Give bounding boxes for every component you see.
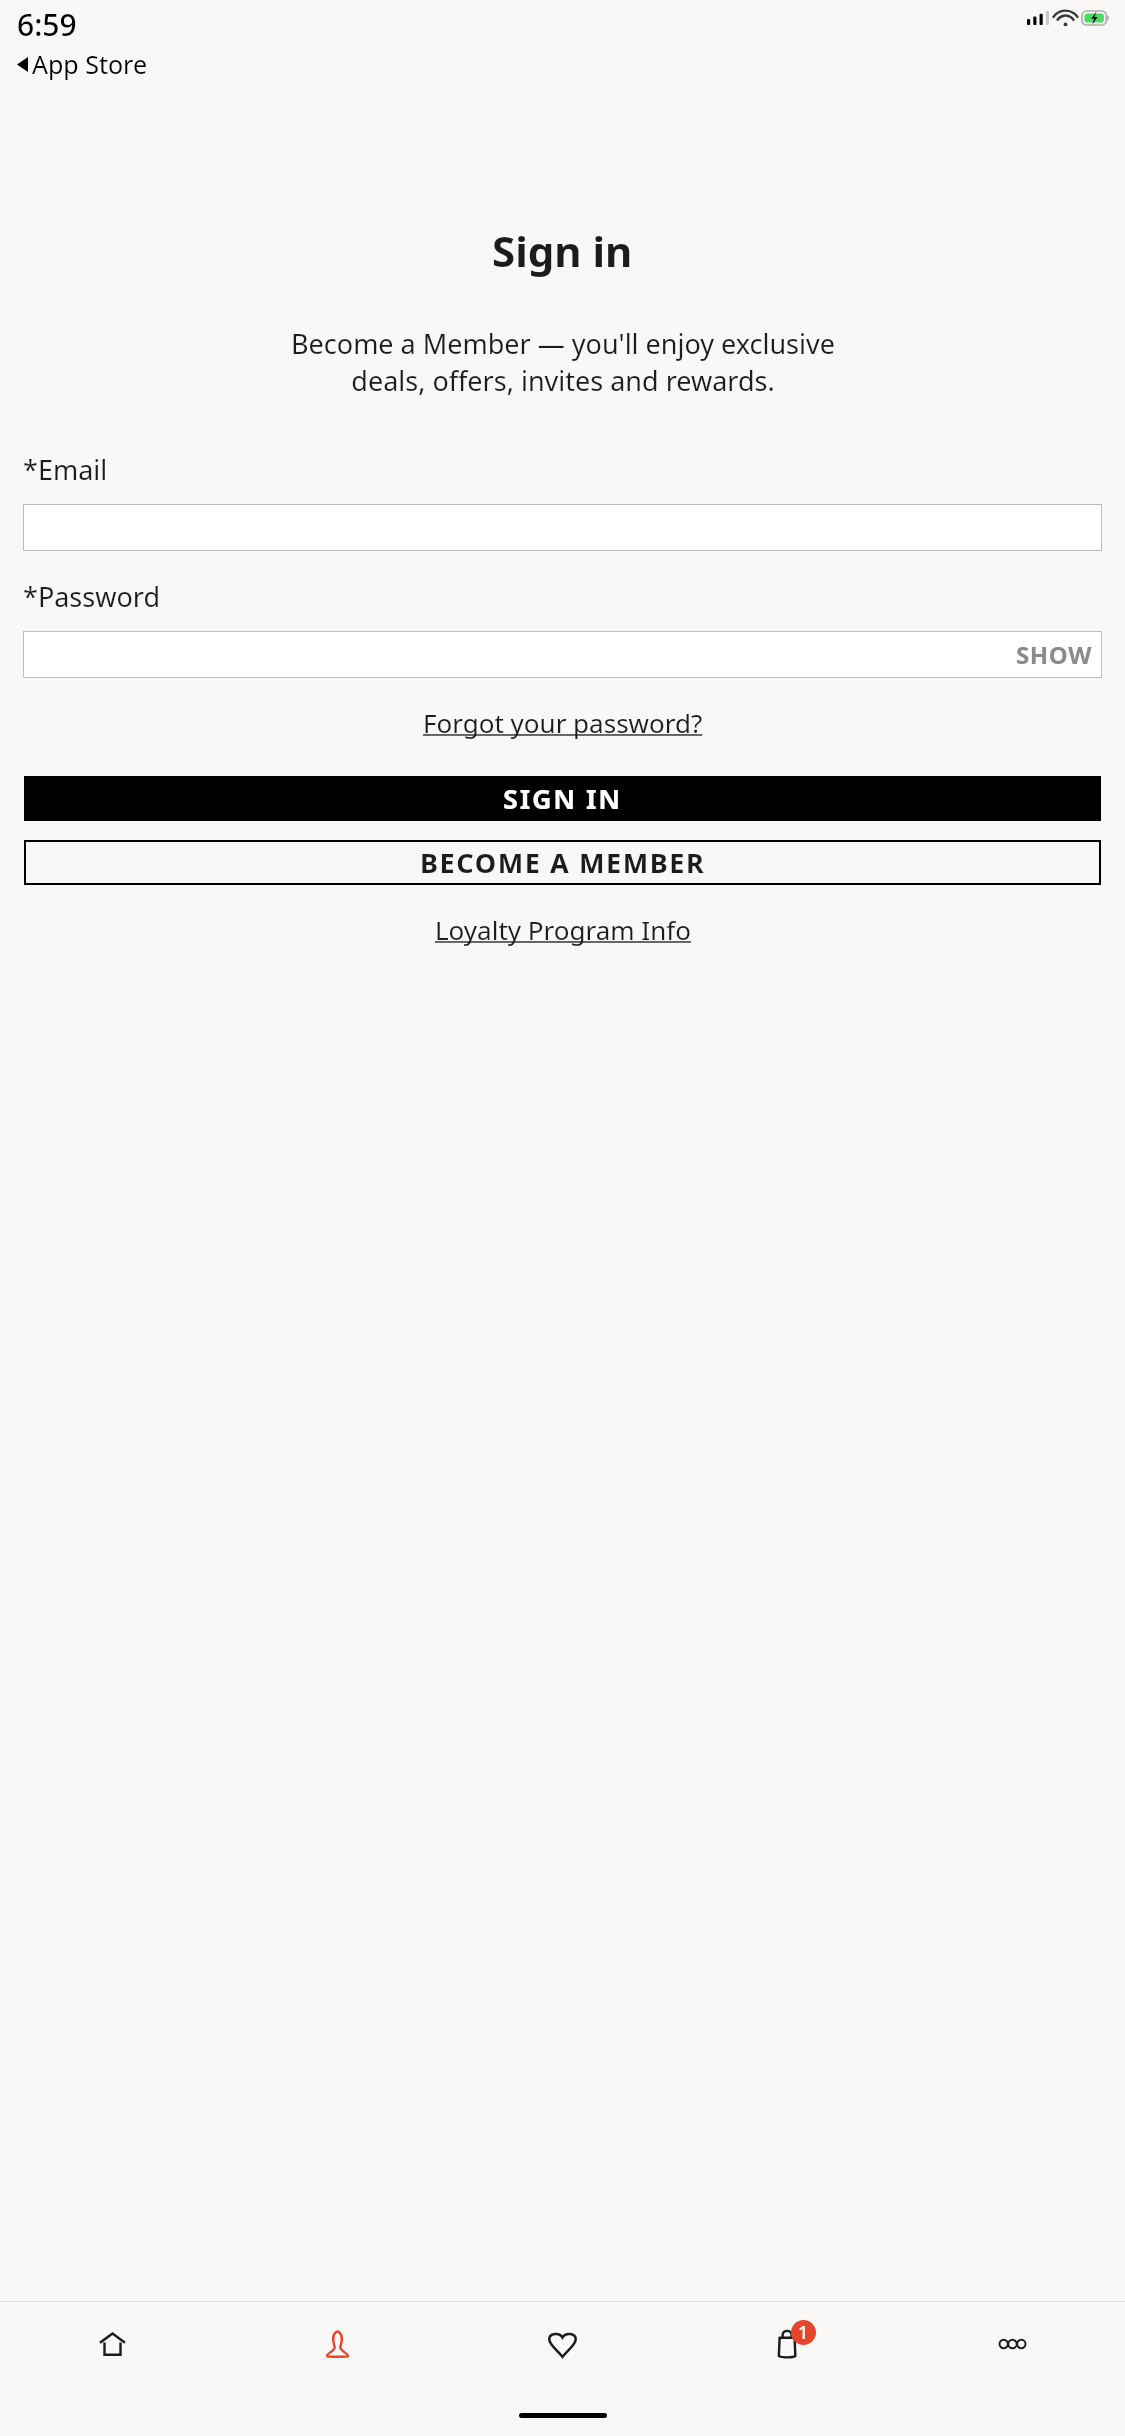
button[interactable]: SIGN IN [24,776,1101,821]
staticText: SIGN IN [503,780,622,817]
button[interactable]: Forgot your password? [417,702,709,743]
button[interactable]: Account [225,2302,450,2386]
button[interactable]: SHOW [23,631,1102,678]
button[interactable] [23,504,1102,551]
button[interactable]: Bag, 1 item [675,2302,900,2386]
button[interactable]: Loyalty Program Info [429,909,697,950]
button[interactable]: Back to App Store [6,47,148,81]
staticText: 6:59 [17,4,77,45]
staticText: Loyalty Program Info [435,912,691,947]
staticText: SHOW [1016,638,1092,671]
staticText: Forgot your password? [423,705,703,740]
button[interactable]: Favorites [450,2302,675,2386]
button[interactable]: BECOME A MEMBER [24,840,1101,885]
staticText: Become a Member — you'll enjoy exclusive… [291,325,835,399]
staticText: BECOME A MEMBER [420,844,706,881]
staticText: 1 [798,2320,809,2345]
button[interactable]: More [900,2302,1125,2386]
staticText: App Store [32,47,148,81]
button[interactable]: Home [0,2302,225,2386]
staticText: *Email [23,451,108,488]
staticText: Sign in [492,222,633,279]
staticText: *Password [23,578,160,615]
button[interactable]: SHOW [1014,634,1094,675]
